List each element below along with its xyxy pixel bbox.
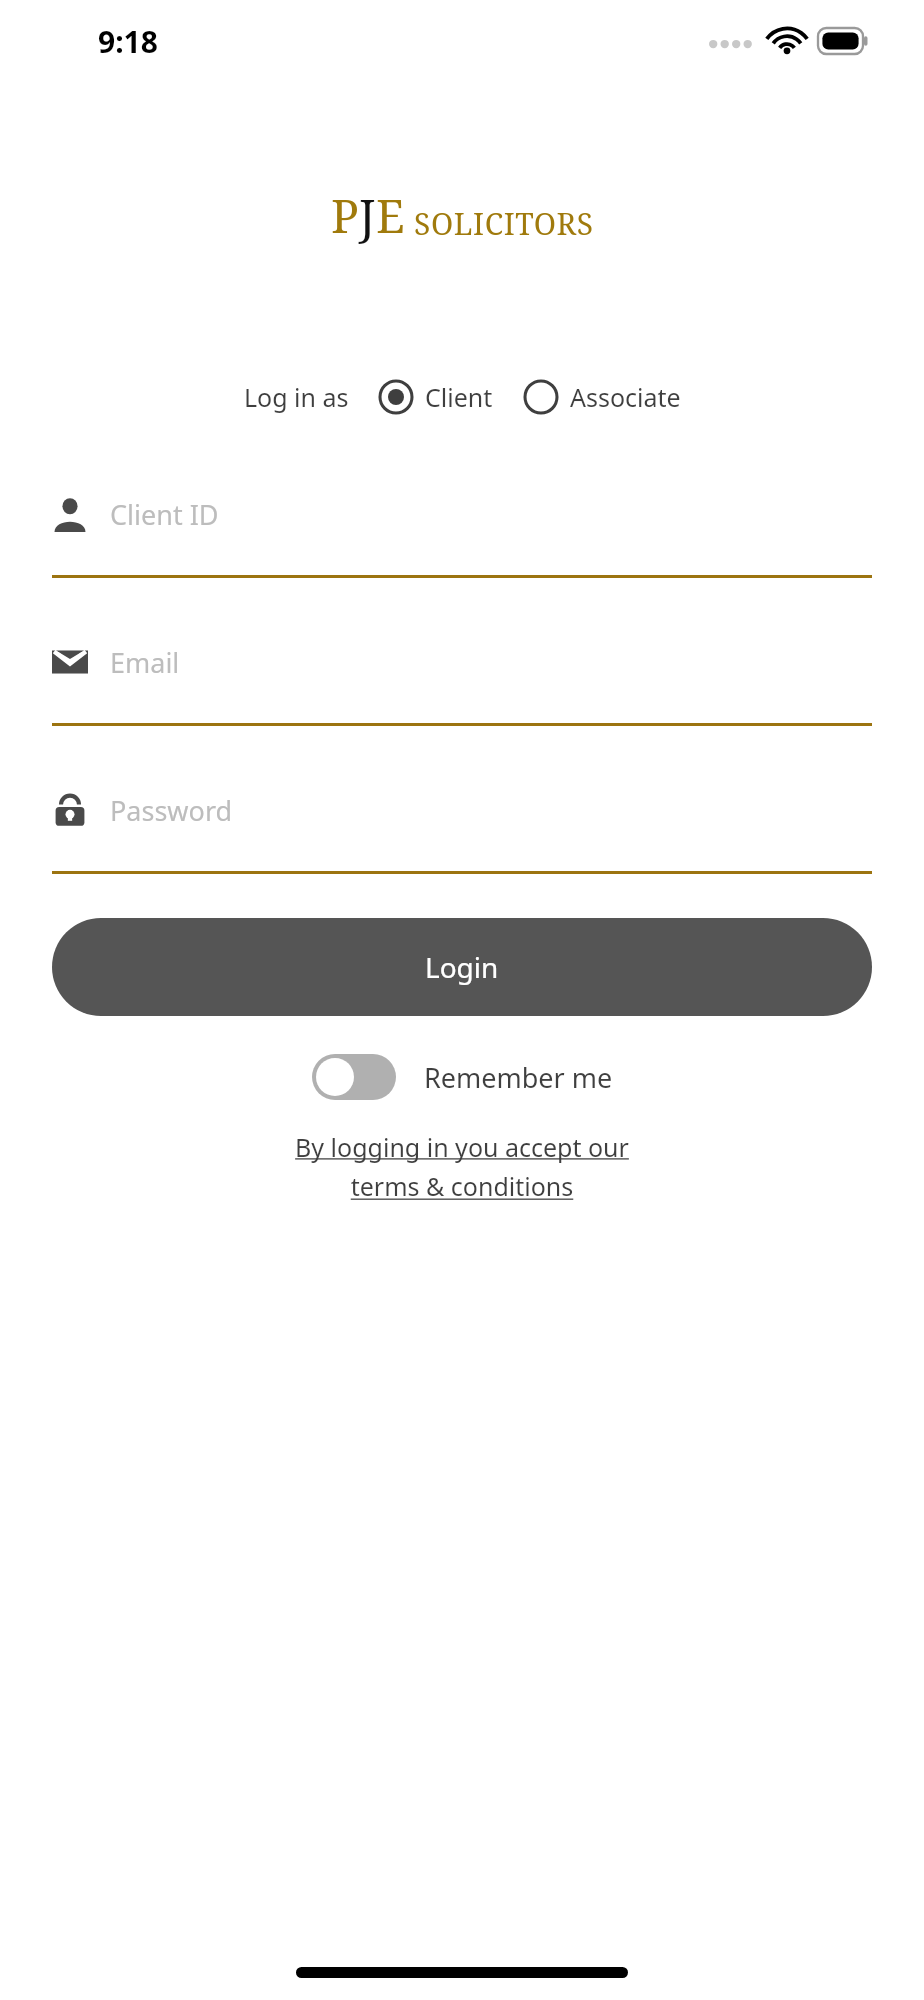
button[interactable]: Client bbox=[378, 379, 493, 415]
staticText: Log in as bbox=[244, 380, 349, 414]
other: Remember me toggle bbox=[312, 1054, 396, 1100]
button[interactable]: Password bbox=[52, 773, 872, 874]
button[interactable]: Associate bbox=[523, 379, 681, 415]
staticText: Login bbox=[425, 948, 499, 986]
staticText: Email bbox=[110, 644, 180, 681]
staticText: Remember me bbox=[424, 1059, 613, 1096]
button[interactable]: Login bbox=[52, 918, 872, 1016]
staticText: Client ID bbox=[110, 496, 219, 533]
staticText: J bbox=[359, 184, 376, 247]
staticText: 9:18 bbox=[98, 21, 158, 62]
staticText: SOLICITORS bbox=[414, 203, 594, 244]
button[interactable]: Email bbox=[52, 625, 872, 726]
button[interactable]: Remember me toggle bbox=[312, 1054, 613, 1100]
staticText: Associate bbox=[570, 380, 681, 414]
staticText: P bbox=[331, 184, 359, 247]
button[interactable]: Client ID bbox=[52, 477, 872, 578]
button[interactable]: By logging in you accept our terms & con… bbox=[0, 1130, 924, 1204]
staticText: Client bbox=[425, 380, 493, 414]
staticText: E bbox=[376, 184, 405, 247]
staticText: Password bbox=[110, 792, 233, 829]
staticText: By logging in you accept our terms & con… bbox=[295, 1130, 629, 1204]
